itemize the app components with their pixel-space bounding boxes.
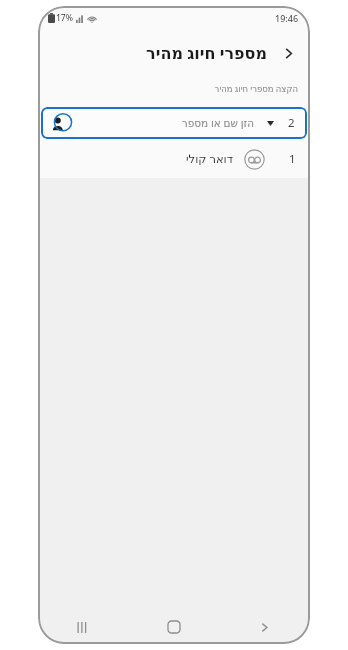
staticText: הקצה מספרי חיוג מהיר — [214, 83, 298, 95]
staticText: מספרי חיוג מהיר — [146, 42, 267, 64]
staticText: 19:46 — [275, 12, 299, 24]
button[interactable]: Dropdown — [263, 116, 277, 130]
button[interactable]: דואר קולי — [38, 140, 310, 178]
staticText: דואר קולי — [186, 151, 233, 167]
button[interactable]: Back — [219, 610, 310, 644]
staticText: 17% — [56, 12, 73, 24]
button[interactable]: Recents — [38, 610, 128, 644]
button[interactable]: Back — [276, 41, 300, 65]
button[interactable]: Home — [128, 610, 219, 644]
staticText: 2 — [288, 115, 295, 131]
staticText: הזן שם או מספר — [181, 116, 254, 130]
staticText: 1 — [289, 151, 296, 167]
button[interactable]: הזן שם או מספר — [41, 107, 307, 139]
